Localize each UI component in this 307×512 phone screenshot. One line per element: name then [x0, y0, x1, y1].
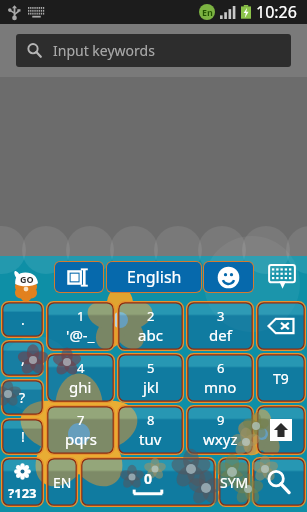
button[interactable]: , [1, 340, 44, 377]
staticText: jkl [143, 377, 159, 397]
button[interactable]: Shift [256, 405, 306, 455]
button[interactable]: Hide keyboard [262, 261, 302, 293]
staticText: GO [20, 273, 34, 285]
staticText: ? [19, 388, 26, 407]
staticText: ghi [69, 377, 92, 397]
staticText: Input keywords [53, 41, 155, 60]
staticText: wxyz [203, 429, 238, 449]
staticText: , [21, 349, 25, 368]
staticText: 7 [77, 411, 85, 429]
button[interactable]: 4 [46, 353, 115, 403]
staticText: 9 [217, 411, 225, 429]
staticText: EN [53, 473, 72, 492]
button[interactable]: GO Keyboard [11, 266, 41, 298]
staticText: tuv [139, 429, 162, 449]
button[interactable]: 7 [46, 405, 115, 455]
button[interactable]: 1 [46, 301, 115, 351]
staticText: 4 [77, 359, 85, 377]
button[interactable]: 8 [117, 405, 184, 455]
button[interactable]: . [1, 301, 44, 338]
staticText: ! [21, 427, 25, 446]
staticText: abc [138, 325, 163, 345]
staticText: SYM [220, 473, 249, 492]
button[interactable]: 9 [186, 405, 254, 455]
staticText: 8 [147, 411, 155, 429]
button[interactable]: SYM [218, 457, 250, 507]
button[interactable]: 5 [117, 353, 184, 403]
staticText: 1 [77, 307, 85, 325]
staticText: 6 [217, 359, 225, 377]
button[interactable]: Search [252, 457, 306, 507]
button[interactable]: Switch input [55, 262, 103, 292]
button[interactable]: English [107, 262, 201, 292]
button[interactable]: Emoji [204, 262, 253, 292]
staticText: 5 [147, 359, 155, 377]
staticText: . [21, 310, 25, 329]
staticText: 3 [217, 307, 225, 325]
button[interactable]: 2 [117, 301, 184, 351]
staticText: 10:26 [256, 1, 297, 23]
button[interactable]: 3 [186, 301, 254, 351]
staticText: En [202, 6, 213, 18]
staticText: T9 [273, 369, 289, 388]
staticText: ?123 [8, 484, 37, 502]
button[interactable]: ?123 [1, 457, 44, 507]
button[interactable]: ! [1, 418, 44, 455]
button[interactable]: 6 [186, 353, 254, 403]
staticText: 2 [147, 307, 155, 325]
button[interactable]: Backspace [256, 301, 306, 351]
staticText: mno [204, 377, 237, 397]
staticText: 0 [144, 469, 153, 488]
staticText: pqrs [65, 429, 97, 449]
button[interactable]: EN [46, 457, 78, 507]
staticText: def [209, 325, 232, 345]
button[interactable]: ? [1, 379, 44, 416]
button[interactable]: Space [80, 457, 216, 507]
button[interactable]: T9 [256, 353, 306, 403]
button[interactable]: Input keywords [16, 34, 291, 67]
staticText: '@-_ [66, 325, 95, 345]
staticText: English [127, 266, 182, 288]
